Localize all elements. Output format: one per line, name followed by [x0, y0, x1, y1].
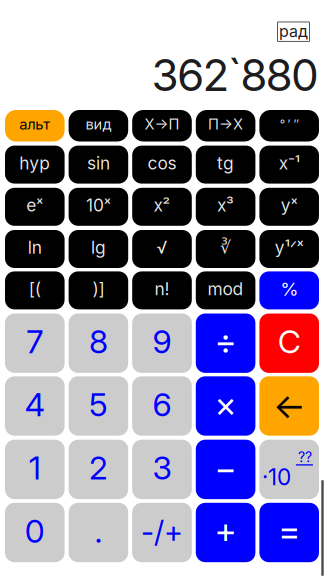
staticText: cos [147, 153, 176, 174]
button[interactable]: 3 [132, 440, 192, 499]
button[interactable]: 1 [5, 440, 65, 499]
button[interactable]: -/+ [132, 503, 192, 562]
staticText: ← [273, 385, 305, 427]
staticText: √ [156, 237, 167, 258]
button[interactable]: ÷ [196, 313, 255, 373]
staticText: 362`880 [152, 48, 319, 102]
staticText: [( [29, 278, 41, 299]
button[interactable]: вид [69, 110, 128, 141]
staticText: lg [91, 237, 106, 258]
button[interactable]: Times ten to the power [259, 440, 319, 499]
button[interactable]: × [196, 376, 255, 436]
staticText: ?? [298, 449, 312, 465]
staticText: X→П [144, 115, 179, 133]
staticText: )] [92, 278, 104, 299]
staticText: x³ [217, 195, 234, 216]
staticText: . [94, 512, 102, 550]
staticText: 2 [89, 448, 108, 487]
button[interactable]: √ [132, 230, 192, 268]
staticText: вид [85, 115, 111, 133]
button[interactable]: 4 [5, 376, 65, 436]
staticText: 5 [89, 385, 108, 424]
staticText: mod [208, 278, 244, 299]
staticText: 0 [25, 512, 45, 550]
staticText: = [278, 510, 300, 552]
button[interactable]: n! [132, 271, 192, 309]
staticText: 1 [29, 448, 41, 487]
staticText: sin [87, 153, 110, 174]
staticText: eˣ [26, 195, 43, 216]
button[interactable]: 9 [132, 313, 192, 373]
button[interactable]: альт [5, 110, 65, 141]
button[interactable]: − [196, 440, 255, 499]
staticText: ·10 [262, 463, 291, 491]
button[interactable]: )] [69, 271, 128, 309]
staticText: -/+ [141, 514, 183, 550]
staticText: − [215, 447, 237, 489]
staticText: % [280, 278, 298, 300]
button[interactable]: tg [196, 146, 255, 184]
button[interactable]: . [69, 503, 128, 562]
button[interactable]: рад [277, 22, 309, 41]
staticText: ln [28, 237, 42, 258]
staticText: C [278, 322, 301, 361]
staticText: 8 [89, 322, 108, 361]
staticText: ∛ [220, 237, 231, 258]
staticText: ° ′ ″ [280, 117, 299, 131]
staticText: 9 [152, 322, 171, 361]
button[interactable]: x² [132, 188, 192, 226]
button[interactable]: 7 [5, 313, 65, 373]
button[interactable]: [( [5, 271, 65, 309]
staticText: 10ˣ [86, 195, 111, 216]
staticText: ÷ [215, 321, 237, 363]
staticText: П→X [208, 115, 243, 133]
button[interactable]: 6 [132, 376, 192, 436]
button[interactable]: C [259, 313, 319, 373]
staticText: 4 [25, 385, 45, 424]
button[interactable]: 10ˣ [69, 188, 128, 226]
button[interactable]: П→X [196, 110, 255, 141]
staticText: рад [279, 21, 308, 41]
staticText: x⁻¹ [279, 153, 300, 174]
button[interactable]: yˣ [259, 188, 319, 226]
button[interactable]: ° ′ ″ [259, 110, 319, 141]
button[interactable]: x⁻¹ [259, 146, 319, 184]
button[interactable]: % [259, 271, 319, 309]
button[interactable]: eˣ [5, 188, 65, 226]
button[interactable]: mod [196, 271, 255, 309]
button[interactable]: x³ [196, 188, 255, 226]
button[interactable]: hyp [5, 146, 65, 184]
button[interactable]: y¹ᐟˣ [259, 230, 319, 268]
button[interactable]: 0 [5, 503, 65, 562]
staticText: n! [154, 278, 169, 299]
staticText: × [215, 383, 237, 425]
staticText: 7 [26, 322, 43, 361]
button[interactable]: X→П [132, 110, 192, 141]
button[interactable]: sin [69, 146, 128, 184]
staticText: yˣ [281, 195, 298, 216]
staticText: + [215, 510, 237, 552]
staticText: y¹ᐟˣ [275, 237, 304, 258]
staticText: hyp [19, 153, 50, 174]
button[interactable]: 5 [69, 376, 128, 436]
staticText: tg [217, 153, 234, 174]
button[interactable]: = [259, 503, 319, 562]
button[interactable]: 8 [69, 313, 128, 373]
button[interactable]: Backspace [259, 376, 319, 436]
button[interactable]: cos [132, 146, 192, 184]
staticText: 3 [152, 448, 171, 487]
staticText: альт [19, 115, 50, 133]
button[interactable]: ln [5, 230, 65, 268]
button[interactable]: ∛ [196, 230, 255, 268]
button[interactable]: + [196, 503, 255, 562]
button[interactable]: lg [69, 230, 128, 268]
button[interactable]: 2 [69, 440, 128, 499]
staticText: x² [153, 195, 170, 216]
staticText: 6 [152, 385, 171, 424]
